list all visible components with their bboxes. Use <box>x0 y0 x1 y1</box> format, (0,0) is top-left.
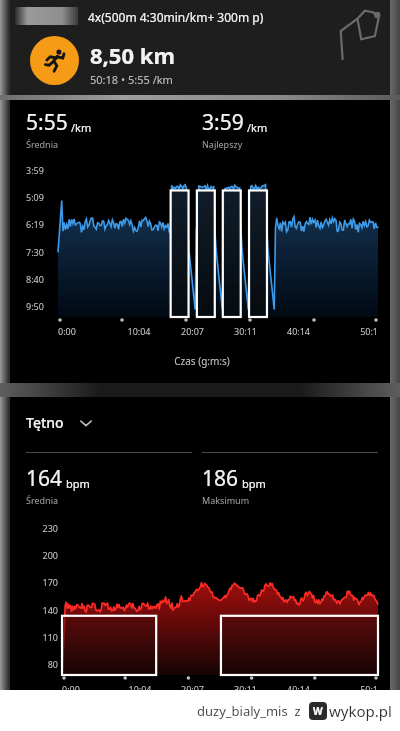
staticText: 50:1 <box>325 325 378 337</box>
staticText: 5:55 <box>26 108 68 137</box>
button[interactable]: Tętno <box>26 413 94 432</box>
staticText: Średnia <box>26 138 59 150</box>
staticText: 0:00 <box>58 325 112 337</box>
button[interactable]: Running activity <box>30 36 79 85</box>
button[interactable]: 164 <box>26 452 192 506</box>
button[interactable]: 4x(500m 4:30min/km+ 300m p) <box>10 0 390 95</box>
staticText: 170 <box>26 576 58 588</box>
staticText: 140 <box>26 604 58 616</box>
staticText: duzy_bialy_mis z <box>197 702 301 720</box>
staticText: 50:18 • 5:55 /km <box>90 72 173 87</box>
staticText: Najlepszy <box>202 138 243 150</box>
staticText: 5:09 <box>26 191 44 203</box>
staticText: 10:04 <box>114 683 166 695</box>
button[interactable]: 186 <box>202 452 378 506</box>
staticText: 40:14 <box>272 683 325 695</box>
staticText: 3:59 <box>26 164 44 176</box>
staticText: wykop.pl <box>329 701 392 721</box>
staticText: Tętno <box>26 413 64 432</box>
staticText: 164 <box>26 464 63 493</box>
staticText: /km <box>247 120 268 135</box>
staticText: Maksimum <box>202 494 250 506</box>
staticText: 186 <box>202 464 239 493</box>
staticText: 6:19 <box>26 218 44 230</box>
staticText: W <box>313 704 323 718</box>
staticText: 30:11 <box>219 325 272 337</box>
button[interactable]: 5:55 <box>26 108 192 150</box>
staticText: 40:14 <box>272 325 325 337</box>
staticText: 200 <box>26 549 58 561</box>
staticText: 9:50 <box>26 300 44 312</box>
staticText: 10:04 <box>112 325 166 337</box>
staticText: 8,50 km <box>90 40 175 70</box>
staticText: 50:1 <box>325 683 378 695</box>
staticText: 7:30 <box>26 246 44 258</box>
staticText: 110 <box>26 631 58 643</box>
staticText: bpm <box>242 476 266 491</box>
staticText: 4x(500m 4:30min/km+ 300m p) <box>88 9 264 25</box>
staticText: bpm <box>66 476 90 491</box>
staticText: /km <box>71 120 92 135</box>
staticText: 20:07 <box>166 683 219 695</box>
staticText: 3:59 <box>202 108 244 137</box>
button[interactable]: 3:59 <box>202 108 378 150</box>
staticText: Czas (g:m:s) <box>26 354 378 368</box>
staticText: 230 <box>26 522 58 534</box>
staticText: 8:40 <box>26 273 44 285</box>
staticText: Średnia <box>26 494 59 506</box>
staticText: 0:00 <box>62 683 114 695</box>
staticText: 80 <box>26 658 58 670</box>
staticText: 30:11 <box>219 683 272 695</box>
staticText: 20:07 <box>166 325 219 337</box>
button[interactable]: Route map <box>324 2 386 64</box>
